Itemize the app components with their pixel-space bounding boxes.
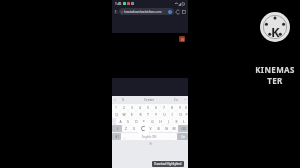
- button[interactable]: Y: [152, 111, 160, 118]
- staticText: 1:45: [115, 2, 122, 6]
- button[interactable]: P: [184, 111, 188, 118]
- staticText: 7: [163, 105, 165, 110]
- button[interactable]: 5: [144, 104, 152, 111]
- button[interactable]: L: [180, 118, 188, 125]
- staticText: H: [159, 119, 162, 124]
- staticText: A: [119, 119, 122, 124]
- button[interactable]: English (IN): [128, 133, 170, 140]
- staticText: D: [135, 119, 138, 124]
- staticText: Z: [125, 126, 127, 131]
- staticText: 1: [115, 105, 117, 110]
- button[interactable]: 0: [184, 104, 188, 111]
- staticText: KINEMASTER: [253, 64, 297, 86]
- staticText: 9: [179, 105, 181, 110]
- button[interactable]: Tabs: [114, 10, 118, 14]
- staticText: 8: [171, 105, 173, 110]
- staticText: P: [185, 112, 188, 117]
- staticText: C: [141, 126, 144, 131]
- staticText: .: [173, 134, 174, 139]
- button[interactable]: M: [170, 125, 178, 132]
- button[interactable]: E: [128, 111, 136, 118]
- staticText: 4: [139, 105, 141, 110]
- staticText: Go: [181, 135, 185, 139]
- button[interactable]: R: [136, 111, 144, 118]
- button[interactable]: A: [116, 118, 124, 125]
- button[interactable]: U: [160, 111, 168, 118]
- button[interactable]: 6: [152, 104, 160, 111]
- button[interactable]: X: [130, 125, 138, 132]
- staticText: ~: [184, 98, 186, 102]
- button[interactable]: ⌫: [178, 125, 188, 132]
- staticText: ,: [124, 134, 125, 139]
- button[interactable]: howtodownloadvideos.com: [119, 8, 174, 15]
- staticText: R: [139, 112, 142, 117]
- staticText: 3: [131, 105, 133, 110]
- button[interactable]: !#1: [112, 133, 121, 140]
- staticText: Co: [174, 98, 178, 102]
- staticText: C: [141, 124, 146, 133]
- button[interactable]: H: [156, 118, 164, 125]
- staticText: I: [171, 112, 173, 117]
- staticText: V: [149, 126, 152, 131]
- staticText: !#1: [115, 135, 119, 139]
- button[interactable]: Go: [177, 133, 188, 140]
- staticText: J: [168, 119, 169, 124]
- staticText: 6: [155, 105, 157, 110]
- staticText: howtodownloadvideos.com: [124, 10, 162, 14]
- button[interactable]: ⇧: [112, 125, 122, 132]
- staticText: U: [163, 112, 166, 117]
- button[interactable]: C: [138, 125, 146, 132]
- button[interactable]: T: [144, 111, 152, 118]
- staticText: Download Highlighted: [154, 162, 182, 166]
- button[interactable]: Account: [168, 10, 172, 14]
- staticText: M: [172, 126, 176, 131]
- staticText: K: [271, 23, 280, 41]
- staticText: N: [165, 126, 168, 131]
- button[interactable]: 9: [176, 104, 184, 111]
- staticText: T: [147, 112, 149, 117]
- button[interactable]: I: [168, 111, 176, 118]
- staticText: L: [183, 119, 185, 124]
- button[interactable]: 8: [168, 104, 176, 111]
- button[interactable]: Q: [112, 111, 120, 118]
- button[interactable]: F: [140, 118, 148, 125]
- staticText: U: [122, 98, 125, 102]
- button[interactable]: ,: [121, 133, 128, 140]
- button[interactable]: S: [124, 118, 132, 125]
- button[interactable]: 2: [120, 104, 128, 111]
- button[interactable]: Z: [122, 125, 130, 132]
- button[interactable]: Refresh: [176, 10, 180, 14]
- button[interactable]: K: [172, 118, 180, 125]
- button[interactable]: G: [148, 118, 156, 125]
- button[interactable]: W: [120, 111, 128, 118]
- button[interactable]: .: [170, 133, 177, 140]
- staticText: English (IN): [142, 135, 157, 139]
- button[interactable]: Notification: [179, 36, 185, 42]
- staticText: Q: [115, 112, 118, 117]
- button[interactable]: N: [162, 125, 170, 132]
- staticText: 0: [185, 105, 187, 110]
- staticText: 5: [147, 105, 149, 110]
- staticText: Y: [155, 112, 157, 117]
- staticText: ⇧: [116, 127, 119, 131]
- staticText: S: [127, 119, 129, 124]
- button[interactable]: 7: [160, 104, 168, 111]
- button[interactable]: More options: [182, 10, 186, 14]
- staticText: K: [175, 119, 178, 124]
- staticText: X: [133, 126, 135, 131]
- button[interactable]: 1: [112, 104, 120, 111]
- button[interactable]: B: [154, 125, 162, 132]
- staticText: W: [122, 112, 126, 117]
- staticText: 2: [123, 105, 125, 110]
- staticText: 1: [115, 10, 117, 14]
- button[interactable]: D: [132, 118, 140, 125]
- staticText: ⌫: [181, 127, 186, 131]
- staticText: B: [157, 126, 160, 131]
- button[interactable]: 3: [128, 104, 136, 111]
- staticText: O: [179, 112, 182, 117]
- button[interactable]: 4: [136, 104, 144, 111]
- button[interactable]: O: [176, 111, 184, 118]
- staticText: F: [143, 119, 145, 124]
- button[interactable]: J: [164, 118, 172, 125]
- button[interactable]: V: [146, 125, 154, 132]
